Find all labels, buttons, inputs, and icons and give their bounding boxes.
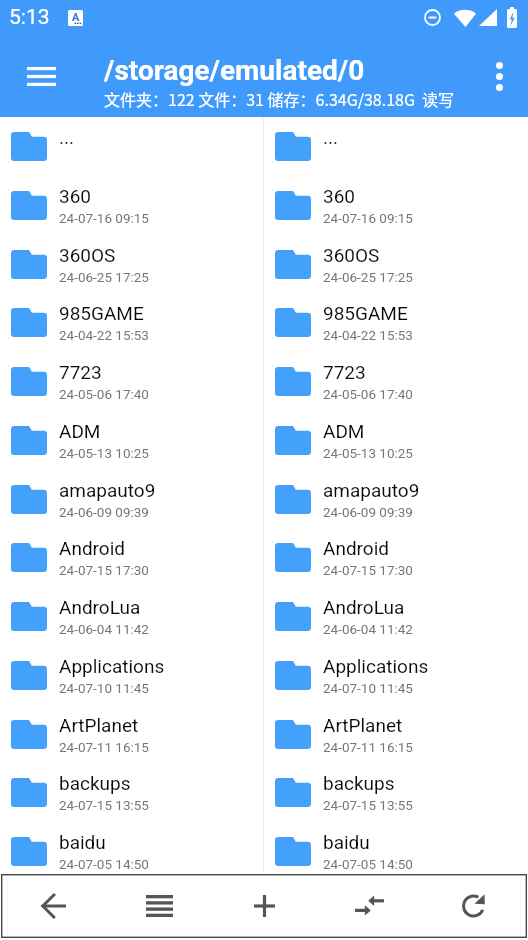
button[interactable]: backups bbox=[264, 763, 528, 822]
button[interactable]: ADM bbox=[0, 411, 263, 470]
staticText: 360OS bbox=[323, 244, 380, 266]
staticText: backups bbox=[59, 772, 131, 794]
staticText: 24-07-10 11:45 bbox=[323, 680, 413, 696]
staticText: 24-06-25 17:25 bbox=[323, 269, 413, 285]
staticText: ArtPlanet bbox=[59, 714, 139, 736]
staticText: 360 bbox=[323, 185, 356, 207]
staticText: 24-07-16 09:15 bbox=[323, 210, 413, 226]
button[interactable]: 985GAME bbox=[0, 293, 263, 352]
staticText: 24-06-25 17:25 bbox=[59, 269, 149, 285]
button[interactable]: Refresh bbox=[422, 874, 527, 938]
button[interactable]: 360OS bbox=[264, 235, 528, 294]
staticText: 24-07-11 16:15 bbox=[59, 739, 149, 755]
staticText: 文件夹：122 文件：31 储存：6.34G/38.18G 读写 bbox=[104, 87, 455, 110]
staticText: 360OS bbox=[59, 244, 116, 266]
staticText: 24-06-04 11:42 bbox=[59, 621, 149, 637]
staticText: AndroLua bbox=[59, 596, 141, 618]
button[interactable]: Android bbox=[0, 528, 263, 587]
staticText: 24-07-11 16:15 bbox=[323, 739, 413, 755]
staticText: ... bbox=[323, 126, 339, 148]
staticText: Applications bbox=[323, 655, 429, 677]
staticText: 24-07-15 17:30 bbox=[59, 562, 149, 578]
button[interactable]: amapauto9 bbox=[264, 470, 528, 529]
staticText: 24-04-22 15:53 bbox=[59, 327, 149, 343]
staticText: 5:13 bbox=[9, 5, 50, 30]
button[interactable]: ADM bbox=[264, 411, 528, 470]
button[interactable]: More options bbox=[476, 53, 522, 99]
staticText: 24-07-15 17:30 bbox=[323, 562, 413, 578]
button[interactable]: baidu bbox=[0, 822, 263, 881]
button[interactable]: AndroLua bbox=[0, 587, 263, 646]
staticText: /storage/emulated/0 bbox=[104, 54, 365, 87]
staticText: 360 bbox=[59, 185, 92, 207]
button[interactable]: List bbox=[107, 874, 212, 938]
staticText: 985GAME bbox=[323, 302, 408, 324]
button[interactable]: Applications bbox=[264, 646, 528, 705]
staticText: 7723 bbox=[323, 361, 366, 383]
staticText: 24-05-13 10:25 bbox=[59, 445, 149, 461]
staticText: AndroLua bbox=[323, 596, 405, 618]
button[interactable]: ... bbox=[0, 117, 263, 176]
staticText: 985GAME bbox=[59, 302, 144, 324]
staticText: A bbox=[72, 11, 80, 24]
staticText: 24-06-09 09:39 bbox=[59, 504, 149, 520]
button[interactable]: Back bbox=[1, 874, 107, 938]
staticText: amapauto9 bbox=[323, 479, 420, 501]
staticText: Applications bbox=[59, 655, 165, 677]
button[interactable]: Add bbox=[212, 874, 317, 938]
staticText: ADM bbox=[323, 420, 365, 442]
button[interactable]: ArtPlanet bbox=[0, 705, 263, 764]
button[interactable]: 7723 bbox=[264, 352, 528, 411]
button[interactable]: AndroLua bbox=[264, 587, 528, 646]
staticText: 24-07-15 13:55 bbox=[59, 797, 149, 813]
staticText: 24-05-06 17:40 bbox=[59, 386, 149, 402]
staticText: baidu bbox=[323, 831, 370, 853]
staticText: baidu bbox=[59, 831, 106, 853]
button[interactable]: 985GAME bbox=[264, 293, 528, 352]
staticText: 24-07-05 14:50 bbox=[323, 856, 413, 872]
button[interactable]: 360OS bbox=[0, 235, 263, 294]
button[interactable]: Menu bbox=[13, 48, 69, 104]
staticText: ... bbox=[59, 126, 75, 148]
button[interactable]: amapauto9 bbox=[0, 470, 263, 529]
staticText: 24-07-10 11:45 bbox=[59, 680, 149, 696]
button[interactable]: 7723 bbox=[0, 352, 263, 411]
staticText: 24-04-22 15:53 bbox=[323, 327, 413, 343]
staticText: 24-07-16 09:15 bbox=[59, 210, 149, 226]
staticText: ArtPlanet bbox=[323, 714, 403, 736]
staticText: 24-06-09 09:39 bbox=[323, 504, 413, 520]
staticText: 24-05-13 10:25 bbox=[323, 445, 413, 461]
staticText: backups bbox=[323, 772, 395, 794]
button[interactable]: backups bbox=[0, 763, 263, 822]
button[interactable]: 360 bbox=[0, 176, 263, 235]
button[interactable]: ... bbox=[264, 117, 528, 176]
button[interactable]: baidu bbox=[264, 822, 528, 881]
staticText: 24-06-04 11:42 bbox=[323, 621, 413, 637]
button[interactable]: Collapse bbox=[317, 874, 422, 938]
button[interactable]: Android bbox=[264, 528, 528, 587]
staticText: ADM bbox=[59, 420, 101, 442]
button[interactable]: ArtPlanet bbox=[264, 705, 528, 764]
staticText: 7723 bbox=[59, 361, 102, 383]
staticText: amapauto9 bbox=[59, 479, 156, 501]
staticText: Android bbox=[323, 537, 390, 559]
button[interactable]: Applications bbox=[0, 646, 263, 705]
staticText: 24-05-06 17:40 bbox=[323, 386, 413, 402]
staticText: 24-07-05 14:50 bbox=[59, 856, 149, 872]
button[interactable]: 360 bbox=[264, 176, 528, 235]
staticText: 24-07-15 13:55 bbox=[323, 797, 413, 813]
staticText: Android bbox=[59, 537, 126, 559]
